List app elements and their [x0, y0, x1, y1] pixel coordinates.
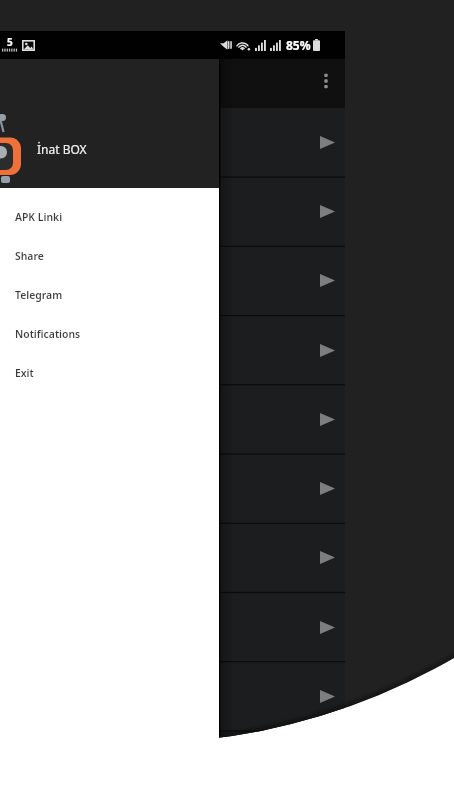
button[interactable]: APK Linki	[0, 197, 219, 236]
button[interactable]	[0, 108, 345, 177]
button[interactable]	[0, 316, 345, 385]
button[interactable]: Exit	[0, 353, 219, 392]
button[interactable]	[0, 731, 345, 800]
button[interactable]	[0, 662, 345, 731]
button[interactable]	[0, 593, 345, 662]
button[interactable]: Notifications	[0, 314, 219, 353]
button[interactable]	[0, 246, 345, 315]
staticText: İnat BOX	[37, 141, 87, 157]
staticText: Exit	[15, 366, 34, 380]
button[interactable]	[0, 454, 345, 523]
staticText: 5	[7, 35, 13, 49]
button[interactable]	[0, 177, 345, 246]
button[interactable]	[0, 385, 345, 454]
staticText: Notifications	[15, 327, 81, 341]
staticText: Share	[15, 249, 44, 263]
button[interactable]	[0, 523, 345, 592]
button[interactable]: Telegram	[0, 275, 219, 314]
staticText: APK Linki	[15, 210, 63, 224]
staticText: 85%	[286, 37, 311, 53]
button[interactable]: Share	[0, 236, 219, 275]
button[interactable]: More options	[311, 66, 341, 96]
staticText: Telegram	[15, 288, 63, 302]
